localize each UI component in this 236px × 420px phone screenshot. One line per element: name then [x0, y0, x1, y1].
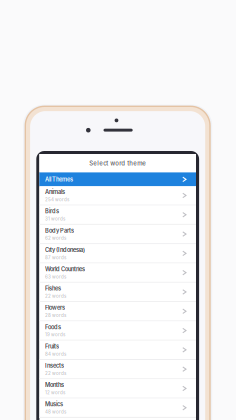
- button[interactable]: Body Parts: [39, 225, 196, 244]
- button[interactable]: Musics: [39, 399, 196, 418]
- button[interactable]: City (Indonesia): [39, 244, 196, 263]
- staticText: Body Parts: [45, 227, 74, 234]
- button[interactable]: Fruits: [39, 341, 196, 360]
- staticText: 48 words: [45, 409, 66, 415]
- button[interactable]: All Themes: [39, 172, 196, 186]
- button[interactable]: Animals: [39, 186, 196, 206]
- staticText: 63 words: [45, 274, 66, 279]
- staticText: 12 words: [45, 390, 65, 395]
- staticText: Animals: [45, 189, 65, 195]
- staticText: Fishes: [45, 285, 61, 292]
- staticText: Musics: [45, 401, 63, 408]
- staticText: 28 words: [45, 313, 66, 318]
- button[interactable]: Months: [39, 379, 196, 399]
- staticText: 87 words: [45, 255, 66, 260]
- staticText: 254 words: [45, 197, 69, 202]
- staticText: World Countries: [45, 266, 85, 273]
- button[interactable]: Flowers: [39, 302, 196, 321]
- staticText: 62 words: [45, 235, 66, 241]
- staticText: Foods: [45, 324, 61, 331]
- button[interactable]: World Countries: [39, 263, 196, 283]
- staticText: Select word theme: [89, 160, 146, 167]
- staticText: City (Indonesia): [45, 246, 85, 253]
- button[interactable]: Foods: [39, 321, 196, 341]
- staticText: 19 words: [45, 332, 65, 337]
- button[interactable]: Birds: [39, 206, 196, 225]
- button[interactable]: Fishes: [39, 283, 196, 302]
- staticText: Fruits: [45, 343, 59, 350]
- staticText: Insects: [45, 362, 64, 369]
- staticText: 22 words: [45, 370, 66, 376]
- staticText: Flowers: [45, 304, 65, 311]
- staticText: 31 words: [45, 216, 65, 222]
- button[interactable]: Insects: [39, 360, 196, 379]
- staticText: Months: [45, 382, 64, 388]
- staticText: 84 words: [45, 351, 66, 357]
- staticText: All Themes: [45, 176, 73, 183]
- staticText: 22 words: [45, 293, 66, 299]
- staticText: Birds: [45, 208, 59, 215]
